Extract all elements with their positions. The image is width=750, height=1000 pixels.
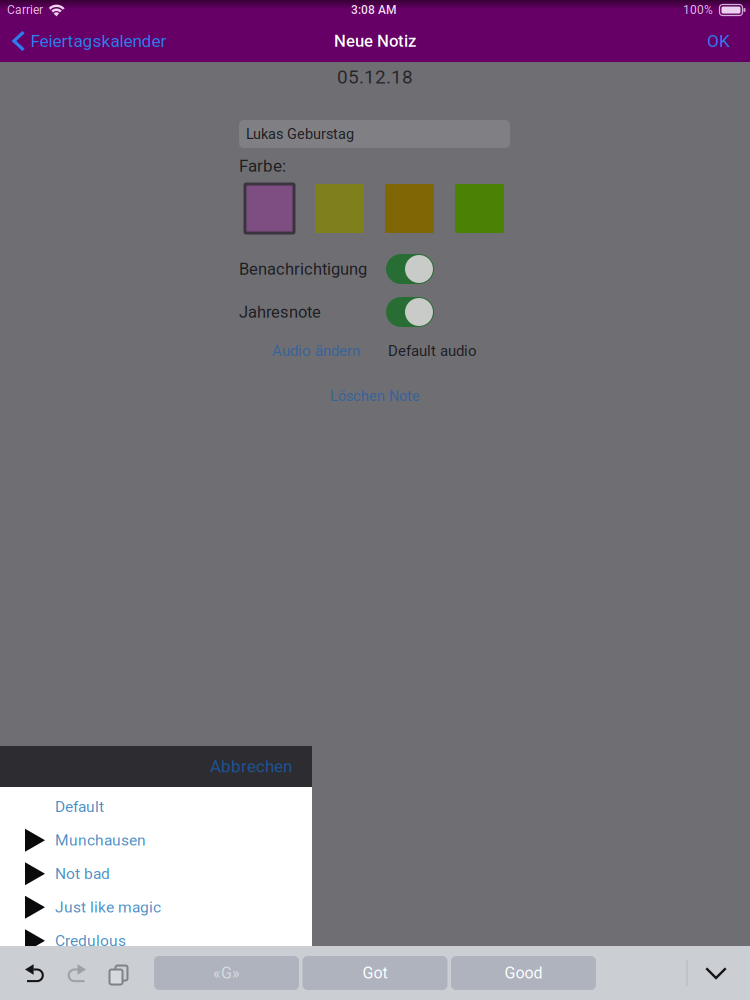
button[interactable]: Good bbox=[451, 956, 596, 990]
staticText: Löschen Note bbox=[330, 387, 420, 404]
button[interactable]: Just like magic bbox=[0, 890, 312, 924]
button[interactable] bbox=[245, 184, 294, 233]
staticText: Munchausen bbox=[55, 831, 146, 849]
staticText: Got bbox=[362, 964, 387, 982]
button[interactable]: Redo bbox=[59, 956, 93, 989]
button[interactable]: Paste bbox=[100, 956, 132, 989]
staticText: Lukas Geburstag bbox=[246, 125, 354, 142]
button[interactable]: OK bbox=[695, 22, 734, 60]
staticText: Default audio bbox=[388, 342, 477, 360]
button[interactable]: Abbrechen bbox=[206, 747, 296, 785]
staticText: Abbrechen bbox=[210, 756, 292, 776]
staticText: Benachrichtigung bbox=[239, 259, 367, 279]
button[interactable]: Audio ändern bbox=[272, 339, 360, 363]
staticText: Feiertagskalender bbox=[30, 31, 166, 51]
staticText: Not bad bbox=[55, 865, 110, 883]
button[interactable]: Feiertagskalender bbox=[12, 21, 174, 60]
button[interactable]: Not bad bbox=[0, 857, 312, 890]
staticText: 05.12.18 bbox=[337, 66, 413, 88]
button[interactable]: Löschen Note bbox=[324, 381, 426, 410]
staticText: Credulous bbox=[55, 932, 126, 950]
button[interactable]: «G» bbox=[154, 956, 299, 990]
button[interactable] bbox=[386, 254, 434, 284]
button[interactable] bbox=[386, 297, 434, 327]
button[interactable]: Hide keyboard bbox=[697, 959, 735, 987]
staticText: 100% bbox=[683, 3, 713, 17]
staticText: Jahresnote bbox=[239, 302, 321, 322]
staticText: Audio ändern bbox=[272, 342, 360, 360]
staticText: Farbe: bbox=[239, 156, 286, 176]
staticText: Just like magic bbox=[55, 898, 161, 916]
button[interactable]: Default bbox=[0, 790, 312, 823]
button[interactable]: Got bbox=[302, 956, 447, 990]
staticText: OK bbox=[707, 31, 730, 51]
staticText: Good bbox=[504, 964, 542, 982]
button[interactable]: Credulous bbox=[0, 924, 312, 957]
button[interactable]: Munchausen bbox=[0, 823, 312, 857]
staticText: Carrier bbox=[7, 3, 43, 17]
staticText: «G» bbox=[213, 964, 240, 982]
staticText: Neue Notiz bbox=[334, 31, 416, 51]
button[interactable]: Undo bbox=[18, 956, 52, 989]
staticText: Default bbox=[55, 798, 104, 816]
staticText: 3:08 AM bbox=[351, 3, 396, 17]
